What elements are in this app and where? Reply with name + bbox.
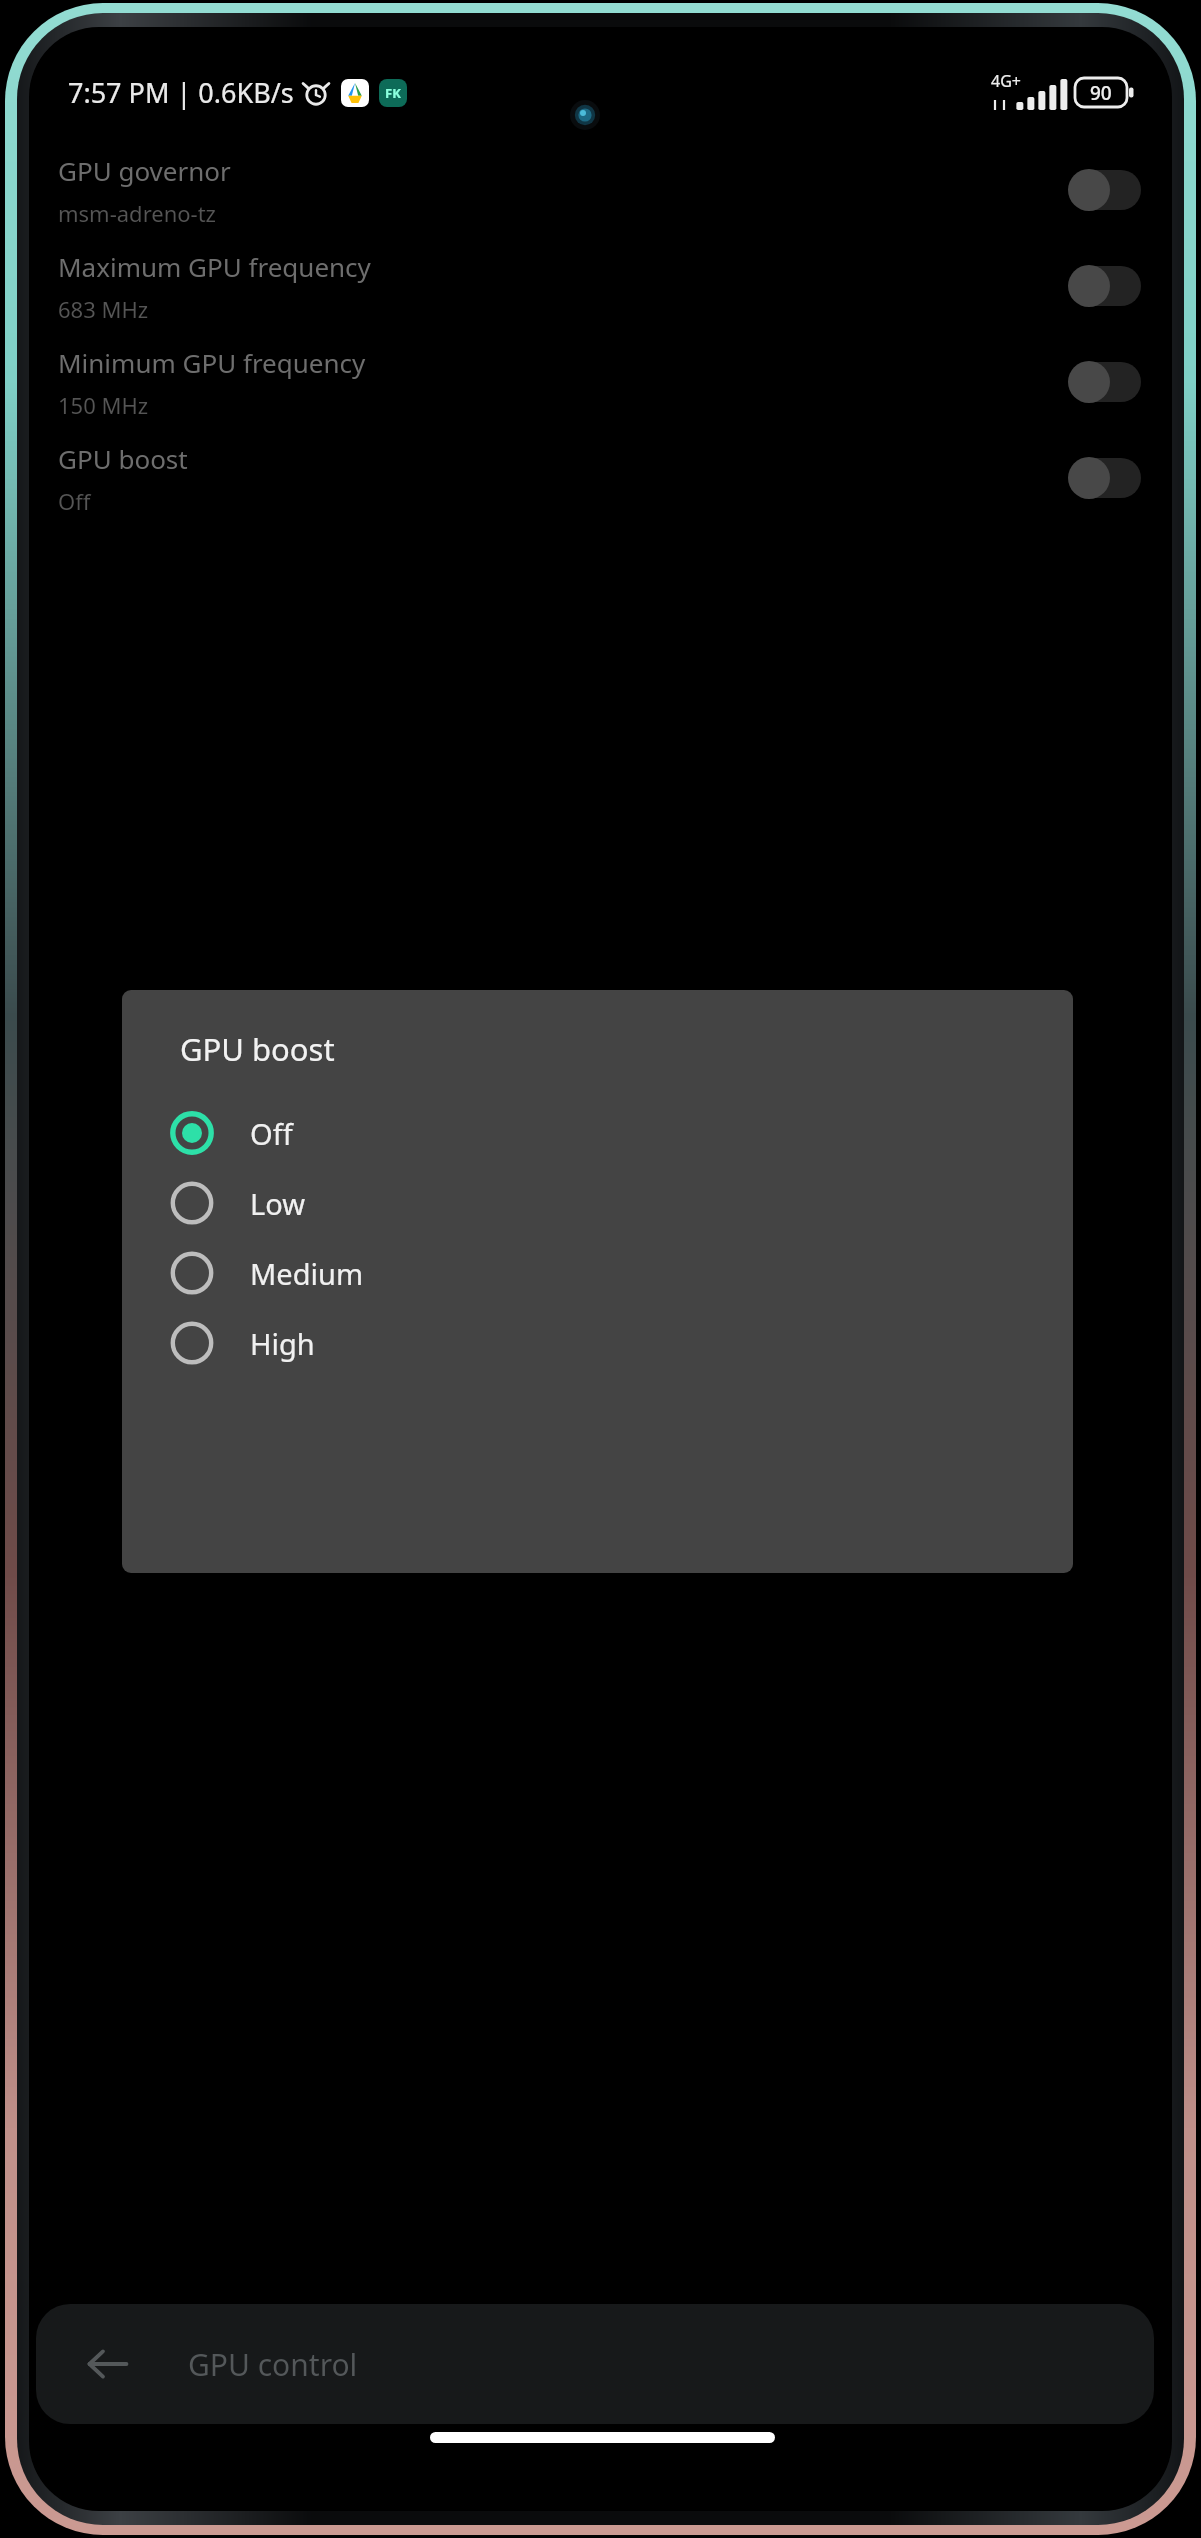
button[interactable]: Toggle bbox=[1061, 452, 1149, 504]
staticText: 150 MHz bbox=[58, 390, 149, 420]
staticText: FK bbox=[385, 84, 401, 102]
button[interactable]: High bbox=[122, 1308, 1073, 1378]
button[interactable]: Back bbox=[36, 2304, 1154, 2424]
staticText: GPU boost bbox=[180, 1028, 335, 1070]
staticText: GPU control bbox=[188, 2344, 358, 2385]
button[interactable]: Maximum GPU frequency bbox=[30, 238, 1171, 334]
button[interactable]: Back bbox=[80, 2336, 136, 2392]
button[interactable]: Minimum GPU frequency bbox=[30, 334, 1171, 430]
button[interactable]: Toggle bbox=[1061, 356, 1149, 408]
staticText: Maximum GPU frequency bbox=[58, 249, 371, 284]
staticText: 90 bbox=[1090, 80, 1112, 106]
staticText: Minimum GPU frequency bbox=[58, 345, 366, 380]
button[interactable]: Off bbox=[122, 1098, 1073, 1168]
staticText: GPU boost bbox=[58, 441, 188, 476]
button[interactable]: Toggle bbox=[1061, 260, 1149, 312]
staticText: 683 MHz bbox=[58, 294, 149, 324]
staticText: msm-adreno-tz bbox=[58, 198, 216, 228]
button[interactable]: GPU boost bbox=[30, 430, 1171, 526]
button[interactable]: Toggle bbox=[1061, 164, 1149, 216]
staticText: 4G+ bbox=[991, 70, 1021, 92]
staticText: Off bbox=[250, 1114, 293, 1153]
staticText: GPU governor bbox=[58, 153, 231, 188]
staticText: Medium bbox=[250, 1254, 364, 1293]
staticText: 7:57 PM | 0.6KB/s bbox=[68, 74, 294, 111]
button[interactable]: Low bbox=[122, 1168, 1073, 1238]
button[interactable]: Medium bbox=[122, 1238, 1073, 1308]
staticText: Off bbox=[58, 486, 91, 516]
staticText: High bbox=[250, 1324, 315, 1363]
staticText: Low bbox=[250, 1184, 305, 1223]
button[interactable]: GPU governor bbox=[30, 142, 1171, 238]
